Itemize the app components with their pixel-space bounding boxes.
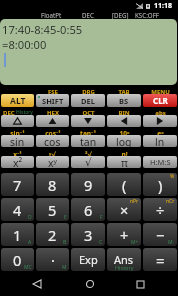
button[interactable]: − xyxy=(143,223,177,246)
staticText: MENU xyxy=(151,88,170,94)
button[interactable]: xʸ xyxy=(36,156,69,168)
staticText: HEX xyxy=(47,109,59,115)
button[interactable]: Recents xyxy=(125,272,155,296)
button[interactable]: π xyxy=(107,156,141,168)
button[interactable]: Exp xyxy=(71,248,105,271)
button[interactable]: + xyxy=(107,223,141,246)
button[interactable]: 2 xyxy=(36,223,69,246)
staticText: 6 xyxy=(84,200,93,220)
button[interactable]: sin xyxy=(1,135,34,147)
staticText: = xyxy=(156,250,165,270)
button[interactable]: log xyxy=(107,135,141,147)
button[interactable]: 3 xyxy=(71,223,105,246)
button[interactable]: Home xyxy=(75,272,105,296)
button[interactable]: BS xyxy=(107,94,141,107)
button[interactable]: Right xyxy=(143,115,177,127)
button[interactable]: CLR xyxy=(143,94,177,107)
staticText: History xyxy=(16,109,33,115)
button[interactable]: x² xyxy=(1,156,34,168)
button[interactable]: 7 xyxy=(1,173,34,196)
staticText: TAB xyxy=(118,88,130,94)
button[interactable]: ( xyxy=(107,173,141,196)
button[interactable]: ALT xyxy=(1,94,34,107)
staticText: =8:00:00 xyxy=(2,37,47,52)
button[interactable]: 5 xyxy=(36,198,69,221)
staticText: sin xyxy=(10,135,25,147)
staticText: Ans xyxy=(114,252,134,267)
staticText: ʸ√ xyxy=(49,150,56,156)
staticText: M+ xyxy=(131,239,139,246)
button[interactable]: ) xyxy=(143,173,177,196)
staticText: − xyxy=(156,225,165,245)
staticText: cos xyxy=(44,135,61,147)
button[interactable]: DEL xyxy=(71,94,105,107)
staticText: Exp xyxy=(79,252,98,267)
button[interactable]: SHIFT xyxy=(36,94,69,107)
staticText: 8 xyxy=(48,175,57,195)
staticText: 10ˣ xyxy=(119,129,130,135)
button[interactable]: ln xyxy=(143,135,177,147)
button[interactable]: 8 xyxy=(36,173,69,196)
staticText: log xyxy=(116,135,132,147)
button[interactable]: Ans xyxy=(107,248,141,271)
other: Battery xyxy=(146,3,150,9)
staticText: ALT xyxy=(10,95,26,107)
staticText: DEC xyxy=(82,11,94,19)
staticText: tan xyxy=(80,135,97,147)
staticText: 9 xyxy=(84,175,93,195)
button[interactable]: H:M:S xyxy=(143,156,177,168)
staticText: MC xyxy=(24,264,32,271)
button[interactable]: Up xyxy=(36,115,69,127)
staticText: nPr xyxy=(130,198,139,205)
staticText: tan⁻¹ xyxy=(80,129,96,135)
button[interactable]: 6 xyxy=(71,198,105,221)
staticText: CLR xyxy=(153,95,168,106)
button[interactable]: √ xyxy=(71,156,105,168)
staticText: M xyxy=(62,264,67,271)
staticText: SHIFT xyxy=(42,96,64,106)
staticText: % xyxy=(170,173,175,180)
staticText: 17:40-8:45-0:55 xyxy=(2,22,83,37)
staticText: E xyxy=(64,214,67,221)
staticText: nCr xyxy=(166,198,175,205)
staticText: B xyxy=(63,239,67,246)
staticText: x⁻¹ xyxy=(13,150,22,156)
staticText: FSE xyxy=(48,88,58,94)
button[interactable]: 0 xyxy=(1,248,34,271)
staticText: 4 xyxy=(13,200,22,220)
button[interactable]: Down xyxy=(71,115,105,127)
staticText: DEC xyxy=(3,109,15,115)
button[interactable]: Page up xyxy=(1,115,34,127)
staticText: [DEG] xyxy=(112,11,129,19)
staticText: 3 xyxy=(84,225,93,245)
button[interactable]: × xyxy=(107,198,141,221)
staticText: 1 xyxy=(13,225,22,245)
button[interactable]: ÷ xyxy=(143,198,177,221)
staticText: History xyxy=(115,264,134,271)
staticText: cos⁻¹ xyxy=(45,129,61,135)
staticText: π xyxy=(121,156,128,168)
staticText: n! xyxy=(121,150,128,156)
button[interactable]: 1 xyxy=(1,223,34,246)
staticText: OCT xyxy=(82,109,95,115)
button[interactable]: cos xyxy=(36,135,69,147)
button[interactable]: Back xyxy=(22,272,52,296)
staticText: abs xyxy=(155,109,166,115)
staticText: C xyxy=(99,239,103,246)
staticText: ) xyxy=(158,175,163,195)
button[interactable]: tan xyxy=(71,135,105,147)
staticText: KSC:OFF xyxy=(135,11,160,19)
staticText: ln xyxy=(155,135,165,147)
button[interactable]: · xyxy=(36,248,69,271)
staticText: DEL xyxy=(81,96,95,106)
button[interactable]: = xyxy=(143,248,177,271)
staticText: × xyxy=(120,200,129,220)
staticText: F xyxy=(100,214,103,221)
staticText: x² xyxy=(13,156,23,168)
staticText: D xyxy=(28,214,32,221)
button[interactable]: 9 xyxy=(71,173,105,196)
staticText: 11:18 xyxy=(154,1,172,11)
button[interactable]: Left xyxy=(107,115,141,127)
staticText: 2 xyxy=(48,225,57,245)
button[interactable]: 4 xyxy=(1,198,34,221)
